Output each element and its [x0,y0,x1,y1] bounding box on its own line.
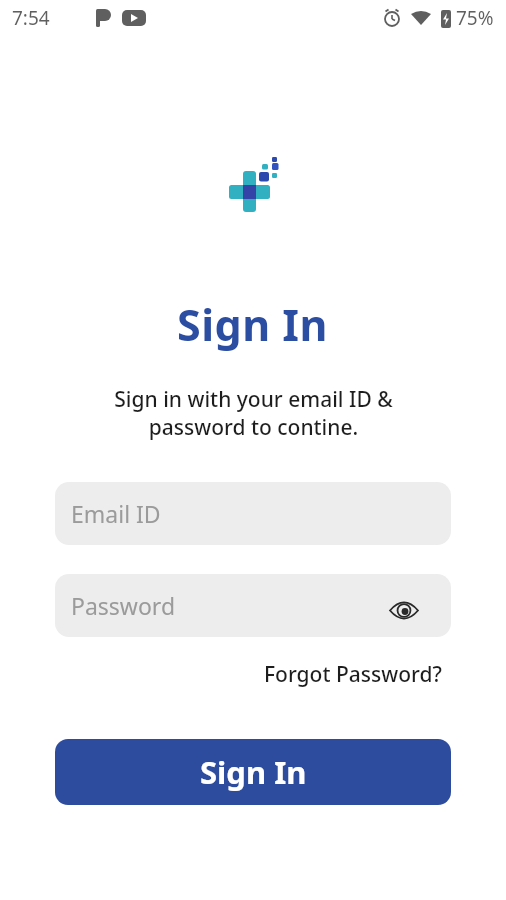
button[interactable]: Sign In [55,739,451,805]
button[interactable]: Email ID [55,482,451,545]
staticText: 75% [456,5,494,31]
staticText: 7:54 [12,5,50,31]
staticText: Sign in with your email ID & password to… [114,385,393,441]
staticText: Email ID [71,498,161,529]
staticText: Sign In [200,751,307,793]
staticText: Sign In [177,295,329,354]
button[interactable]: Forgot Password? [264,660,442,689]
button[interactable]: Password [55,574,451,637]
staticText: Password [71,590,176,621]
